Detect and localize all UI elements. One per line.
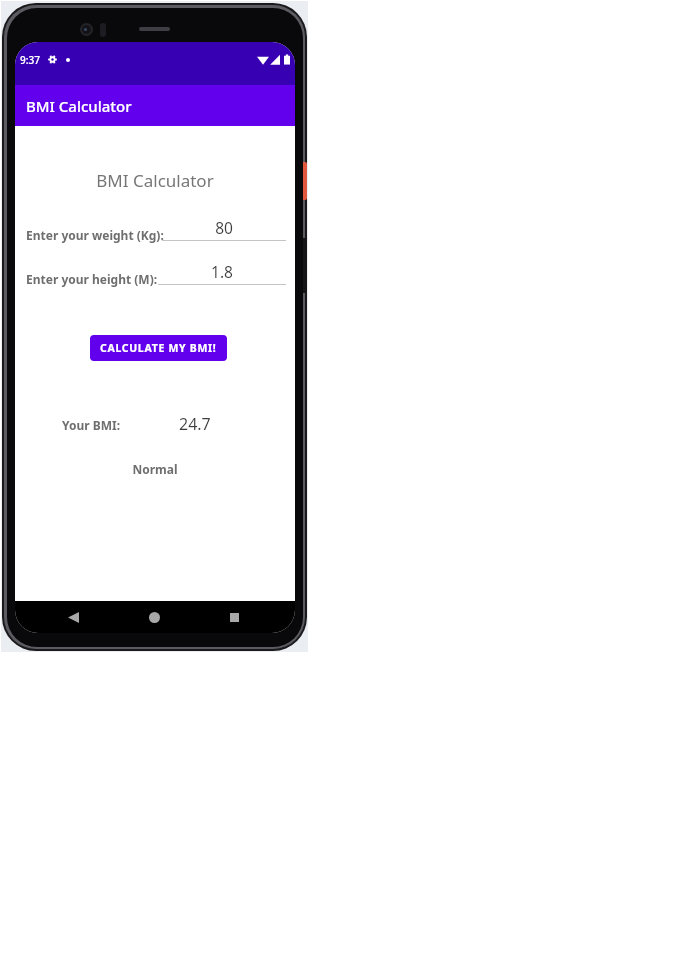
button[interactable]: Weight in kilograms	[162, 217, 286, 241]
staticText: BMI Calculator	[15, 169, 295, 192]
staticText: Your BMI:	[62, 417, 121, 433]
staticText: 1.8	[158, 261, 286, 282]
staticText: Enter your height (M):	[26, 271, 158, 287]
button[interactable]: Height in metres	[158, 261, 286, 285]
button[interactable]: Back	[58, 602, 89, 633]
staticText: BMI Calculator	[26, 96, 132, 116]
button[interactable]: CALCULATE MY BMI!	[90, 335, 227, 361]
staticText: 24.7	[179, 413, 211, 435]
button[interactable]: Recent apps	[219, 602, 250, 633]
staticText: Normal	[15, 461, 295, 477]
button[interactable]: Home	[139, 602, 170, 633]
staticText: CALCULATE MY BMI!	[100, 341, 217, 355]
staticText: 80	[162, 217, 286, 238]
other: Settings	[48, 55, 57, 64]
staticText: Enter your weight (Kg):	[26, 227, 164, 243]
staticText: 9:37	[20, 53, 40, 66]
